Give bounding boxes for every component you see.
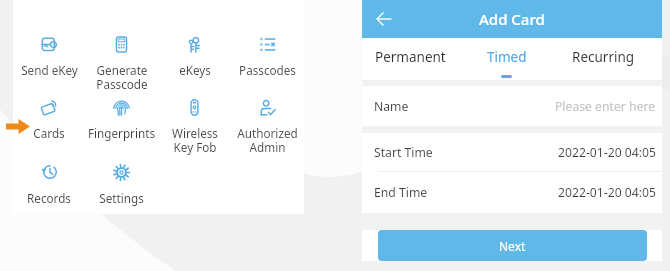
- button[interactable]: Back: [371, 7, 395, 31]
- button[interactable]: Name: [374, 86, 656, 126]
- button[interactable]: Authorized Admin: [231, 99, 304, 161]
- button[interactable]: Settings: [85, 164, 158, 226]
- staticText: Send eKey: [21, 62, 78, 78]
- staticText: Please enter here: [555, 98, 656, 115]
- staticText: Recurring: [572, 48, 635, 66]
- staticText: Name: [374, 98, 409, 115]
- button[interactable]: End Time: [374, 172, 656, 213]
- staticText: Cards: [33, 125, 65, 141]
- button[interactable]: Wireless Key Fob: [158, 99, 231, 161]
- staticText: Generate Passcode: [96, 62, 148, 92]
- staticText: Next: [499, 238, 526, 254]
- button[interactable]: Permanent: [362, 38, 458, 80]
- staticText: Wireless Key Fob: [172, 125, 218, 155]
- staticText: Authorized Admin: [237, 125, 298, 155]
- button[interactable]: Start Time: [374, 133, 656, 171]
- button[interactable]: Next: [378, 230, 647, 261]
- staticText: Records: [27, 190, 71, 206]
- button[interactable]: Recurring: [555, 38, 652, 80]
- staticText: Add Card: [479, 9, 545, 29]
- button[interactable]: Fingerprints: [85, 99, 158, 161]
- staticText: Passcodes: [239, 62, 296, 78]
- staticText: Settings: [99, 190, 144, 206]
- staticText: Permanent: [375, 48, 446, 66]
- staticText: 2022-01-20 04:05: [558, 184, 656, 201]
- staticText: eKeys: [179, 62, 211, 78]
- staticText: Start Time: [374, 144, 433, 161]
- button[interactable]: Cards: [13, 99, 85, 161]
- button[interactable]: eKeys: [158, 36, 231, 98]
- staticText: Timed: [487, 48, 527, 66]
- button[interactable]: Send eKey: [13, 36, 85, 98]
- button[interactable]: Passcodes: [231, 36, 304, 98]
- staticText: 2022-01-20 04:05: [558, 144, 656, 161]
- button[interactable]: Records: [13, 164, 85, 226]
- staticText: End Time: [374, 184, 428, 201]
- staticText: Fingerprints: [88, 125, 155, 141]
- button[interactable]: Generate Passcode: [85, 36, 158, 98]
- button[interactable]: Timed: [458, 38, 555, 80]
